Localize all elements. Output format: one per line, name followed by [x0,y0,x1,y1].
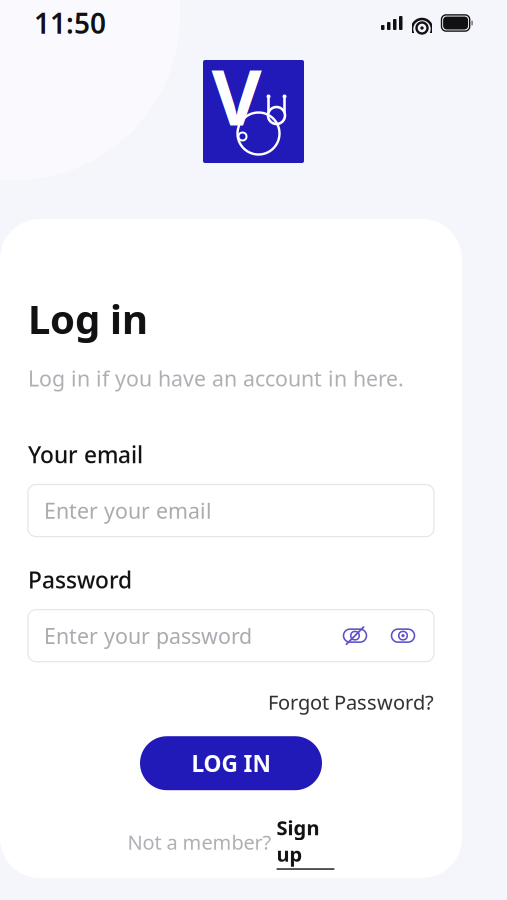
staticText: Not a member? [127,829,276,855]
button[interactable]: Forgot Password? [268,689,434,715]
button[interactable]: Hide password [338,619,372,653]
staticText: Log in [28,292,148,345]
staticText: Enter your password [44,621,252,650]
staticText: Your email [28,439,143,469]
staticText: Forgot Password? [268,689,434,715]
staticText: LOG IN [191,748,270,778]
button[interactable]: Show password [386,619,420,653]
staticText: Sign up [276,814,319,867]
staticText: Log in if you have an account in here. [28,364,404,392]
staticText: Password [28,564,132,595]
staticText: Enter your email [44,496,212,525]
button[interactable]: Sign up [276,814,334,870]
button[interactable]: LOG IN [140,736,322,790]
staticText: 11:50 [34,4,106,42]
staticText: V [211,44,261,147]
